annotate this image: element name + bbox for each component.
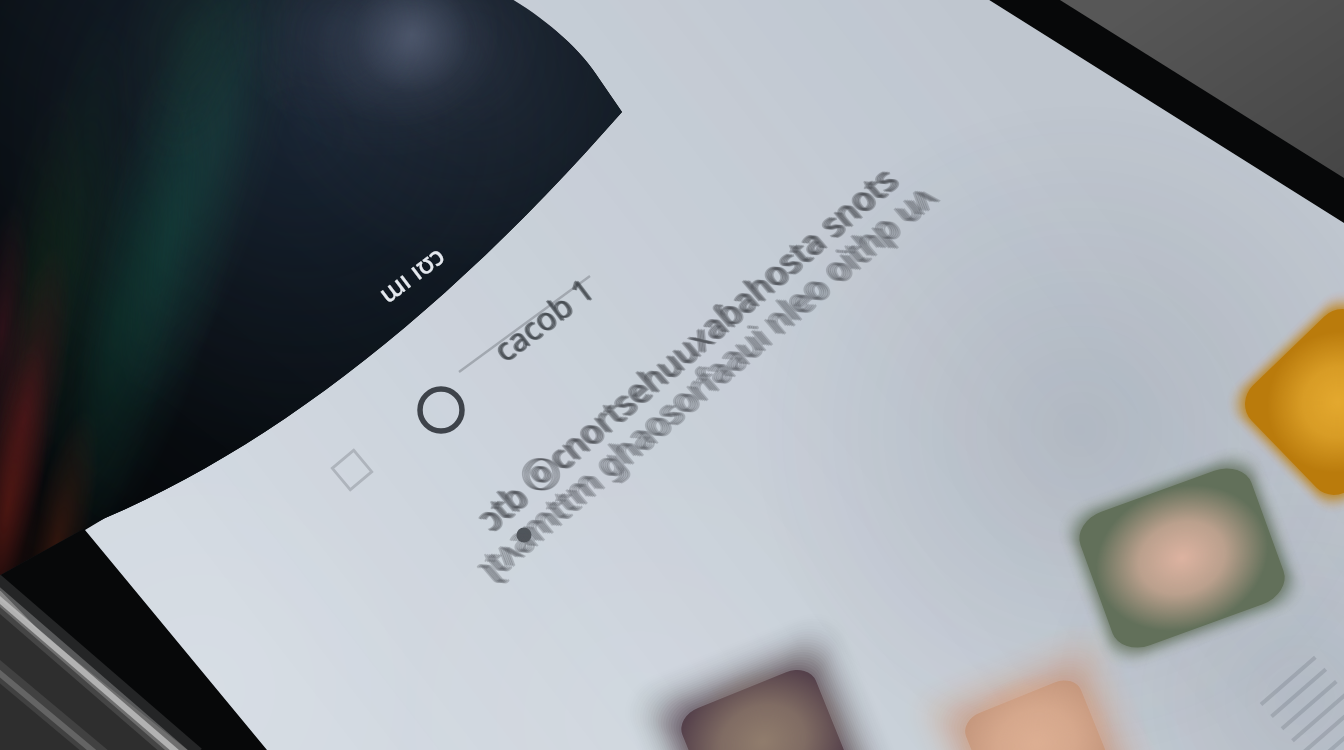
button[interactable]: App xyxy=(944,658,1128,750)
button[interactable]: cacob 1 xyxy=(440,278,616,394)
button[interactable]: Recent apps xyxy=(322,440,382,500)
button[interactable]: Home xyxy=(410,379,472,441)
button[interactable]: Photo app xyxy=(1072,470,1292,648)
button[interactable]: App xyxy=(663,652,863,750)
button[interactable]: Amber app xyxy=(1250,320,1344,486)
button[interactable]: Note entry xyxy=(452,430,972,630)
